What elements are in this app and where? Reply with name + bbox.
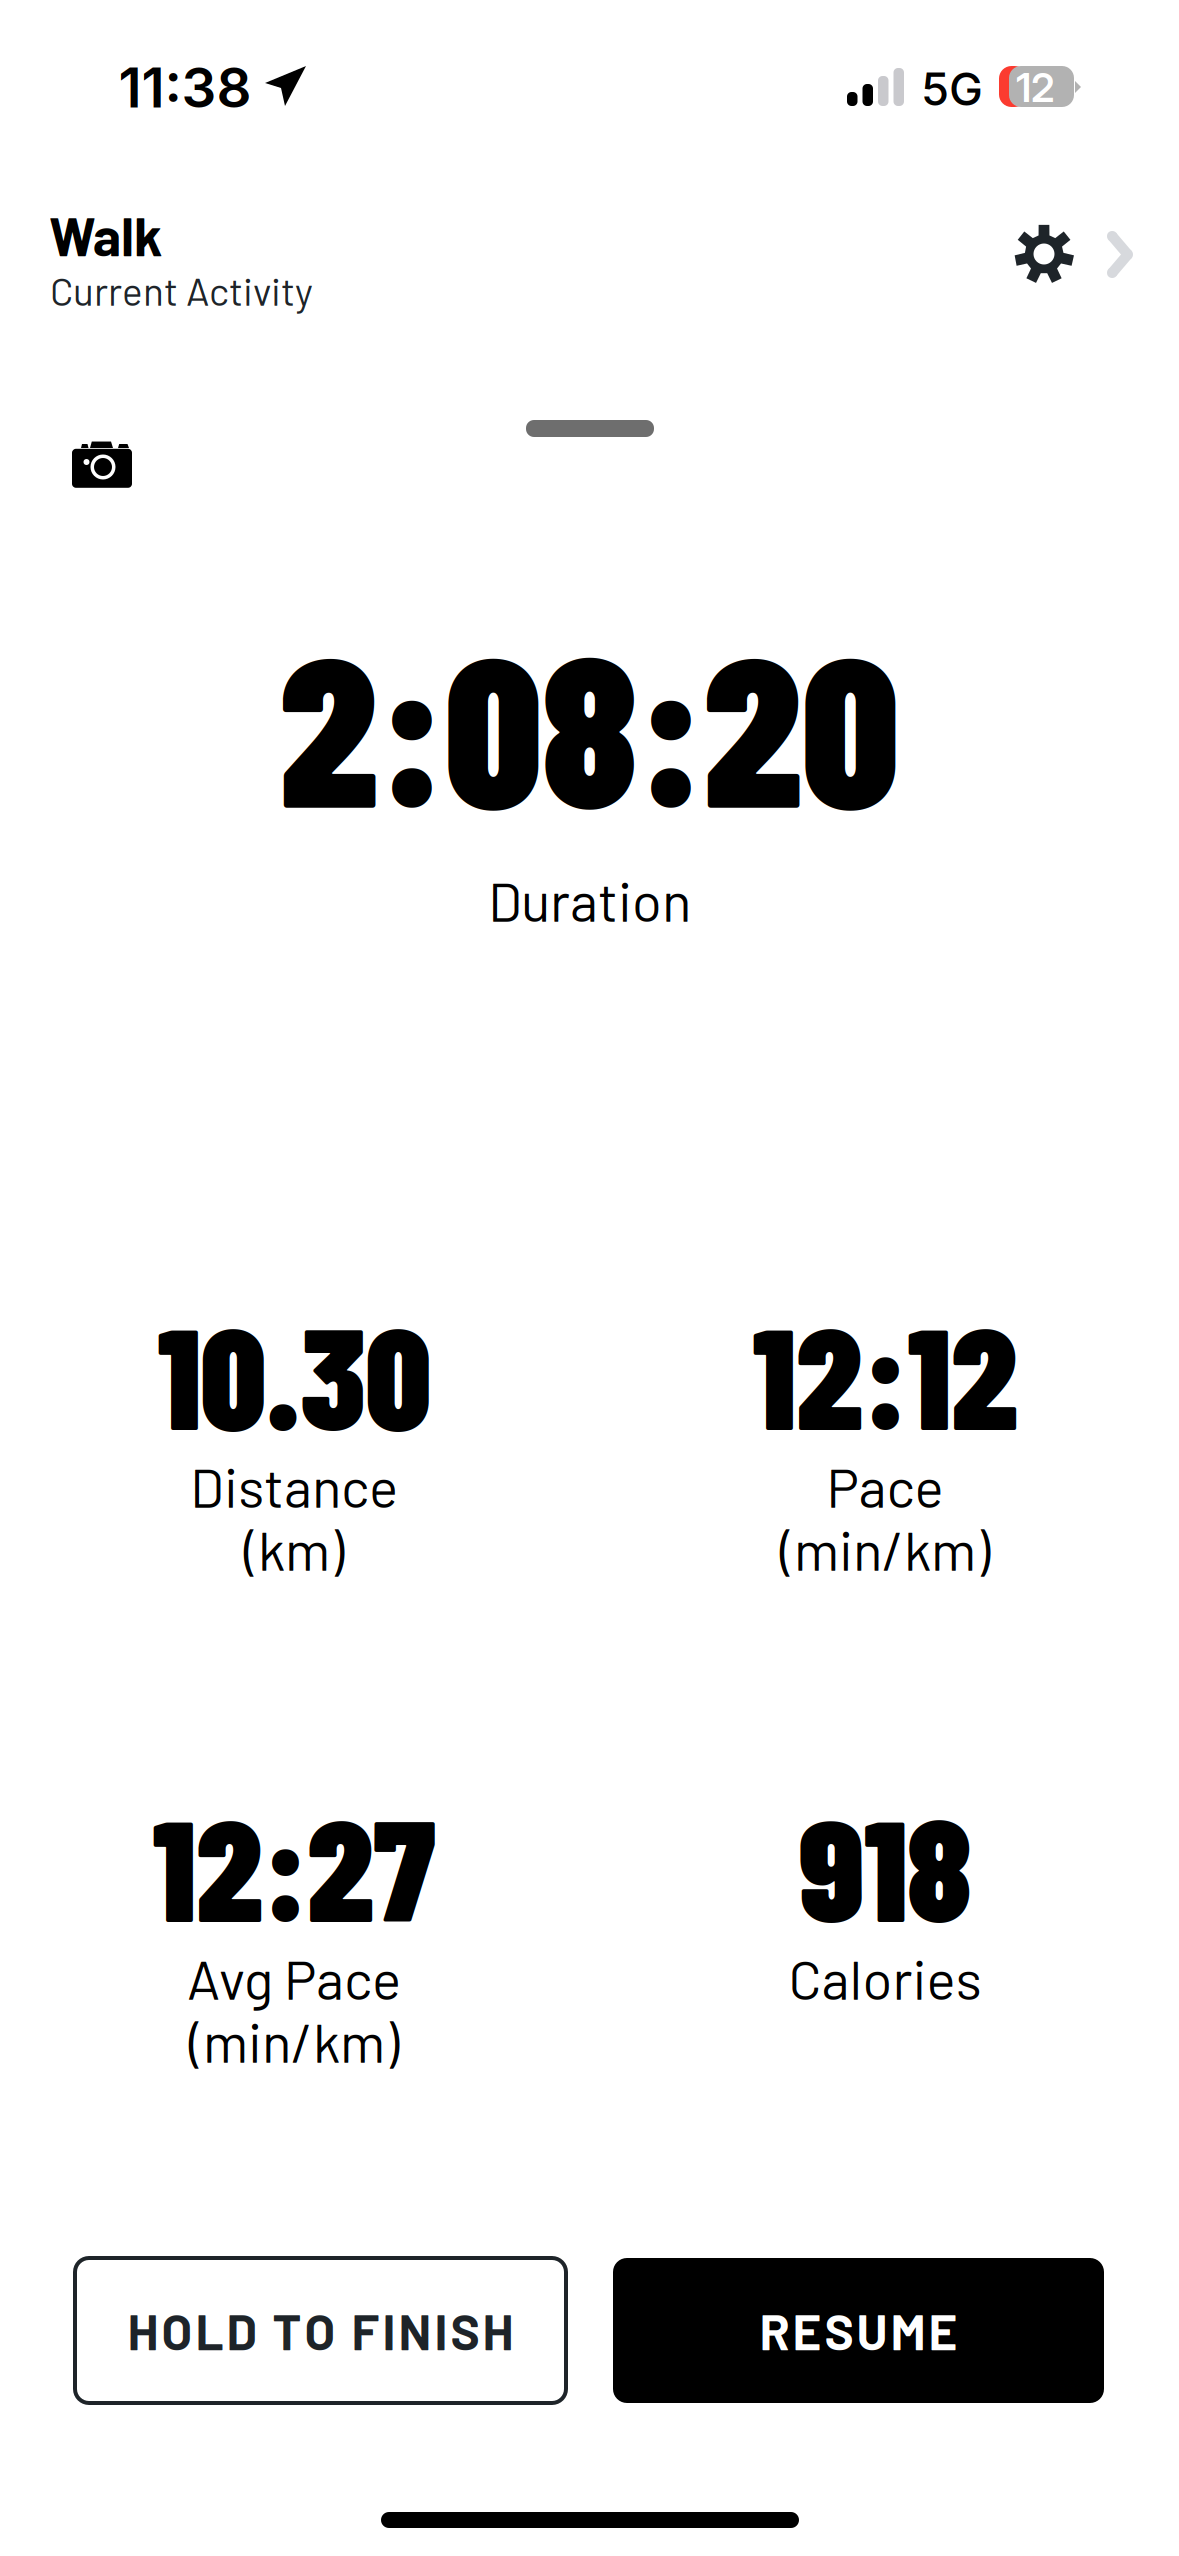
staticText: Duration: [488, 867, 691, 933]
staticText: Avg Pace: [187, 1945, 401, 2011]
staticText: Calories: [788, 1945, 981, 2011]
staticText: 11:38: [118, 54, 251, 120]
staticText: (min/km): [189, 2008, 399, 2074]
staticText: Current Activity: [50, 267, 313, 313]
staticText: 5G: [921, 62, 983, 116]
staticText: 12: [1016, 63, 1055, 112]
staticText: (min/km): [780, 1516, 990, 1582]
staticText: H O L D T O F I N I S H: [127, 2301, 513, 2360]
staticText: 2:08:20: [280, 597, 899, 850]
button[interactable]: Settings: [1000, 210, 1148, 298]
staticText: (km): [244, 1516, 344, 1582]
staticText: 12:12: [752, 1287, 1017, 1459]
staticText: Pace: [826, 1453, 943, 1519]
button[interactable]: R E S U M E: [613, 2258, 1104, 2403]
button[interactable]: Take photo: [59, 430, 145, 500]
staticText: Distance: [190, 1453, 398, 1519]
staticText: 918: [799, 1779, 971, 1951]
button[interactable]: H O L D T O F I N I S H: [75, 2258, 566, 2403]
staticText: Walk: [49, 203, 162, 267]
staticText: 12:27: [152, 1779, 435, 1951]
staticText: 10.30: [157, 1287, 430, 1459]
staticText: R E S U M E: [759, 2301, 957, 2360]
